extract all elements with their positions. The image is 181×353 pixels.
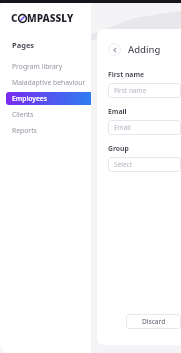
button[interactable]: Email: [108, 120, 181, 135]
staticText: Pages: [12, 40, 35, 50]
staticText: MPASSLY: [27, 11, 74, 25]
staticText: Employees: [12, 94, 47, 103]
staticText: Reports: [12, 126, 37, 135]
button[interactable]: Clients: [0, 108, 91, 121]
button[interactable]: Discard: [126, 314, 181, 329]
staticText: Group: [108, 144, 129, 153]
staticText: Maladaptive behaviour: [12, 78, 86, 87]
staticText: Clients: [12, 110, 34, 119]
button[interactable]: Program library: [0, 60, 91, 73]
button[interactable]: Back: [108, 43, 121, 56]
button[interactable]: First name: [108, 83, 181, 98]
button[interactable]: Select: [108, 157, 181, 172]
staticText: Select: [114, 160, 133, 169]
staticText: First name: [114, 86, 147, 95]
staticText: Email: [108, 107, 127, 116]
staticText: Program library: [12, 62, 63, 71]
staticText: First name: [108, 70, 145, 79]
button[interactable]: Maladaptive behaviour: [0, 76, 91, 89]
staticText: C: [11, 11, 18, 25]
staticText: Email: [114, 123, 131, 132]
button[interactable]: Reports: [0, 124, 91, 137]
button[interactable]: Employees: [6, 92, 91, 105]
staticText: Discard: [142, 317, 166, 326]
staticText: Adding new employee: [128, 43, 181, 56]
